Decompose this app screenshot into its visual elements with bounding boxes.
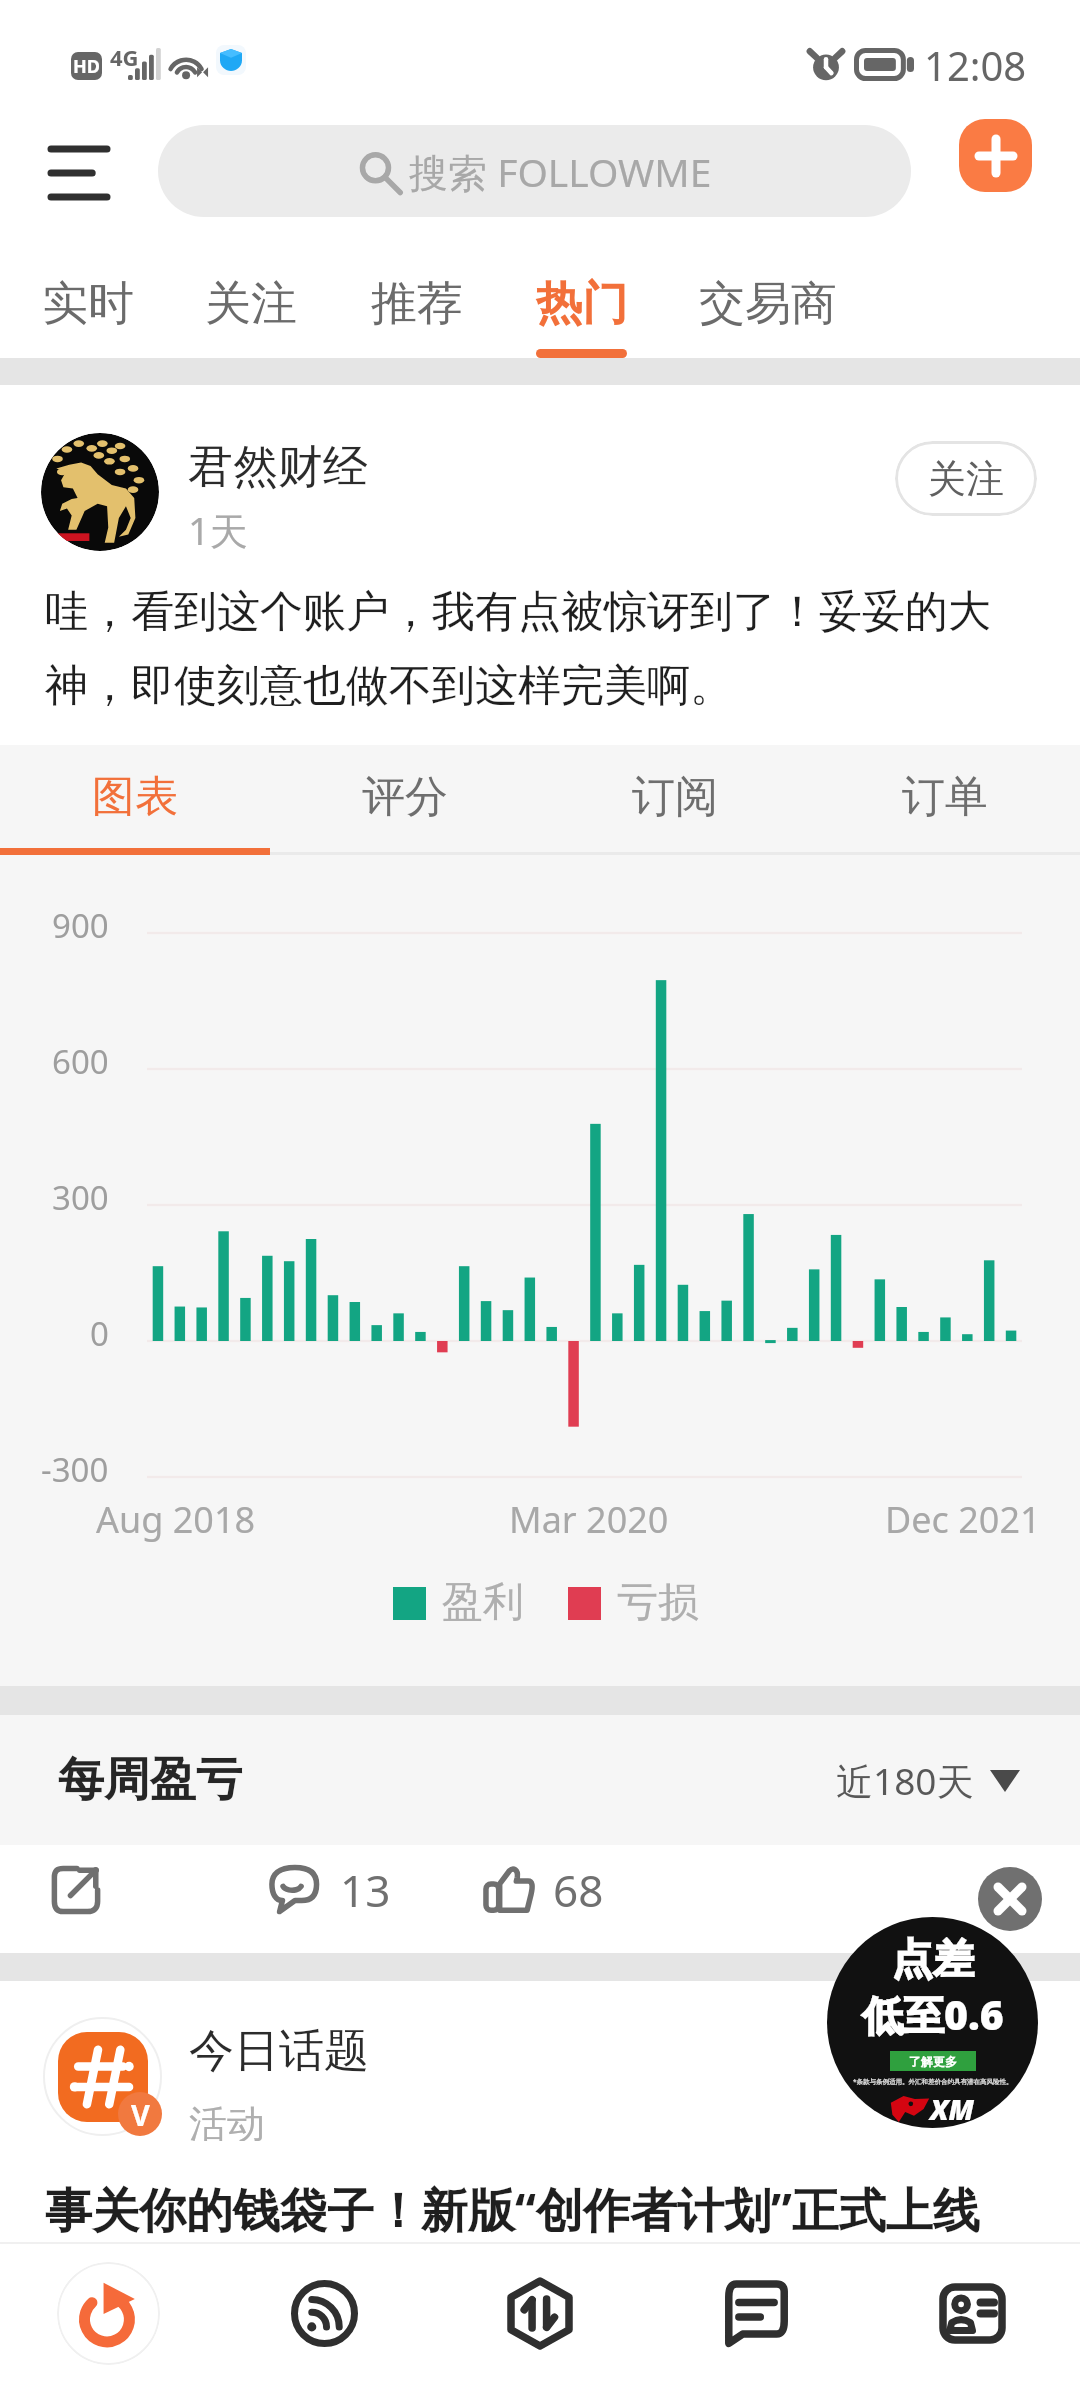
staticText: 搜索 FOLLOWME	[409, 145, 712, 198]
staticText: 600	[52, 1039, 109, 1084]
staticText: 关注	[928, 455, 1004, 503]
button[interactable]: 关注	[186, 235, 316, 358]
staticText: 300	[52, 1175, 109, 1220]
staticText: 近180天	[836, 1755, 974, 1806]
staticText: 活动	[189, 2100, 265, 2141]
staticText: 了解更多	[909, 2054, 957, 2069]
staticText: 推荐	[371, 275, 463, 333]
staticText: 事关你的钱袋子！新版“创作者计划”正式上线	[45, 2177, 980, 2241]
staticText: -300	[41, 1447, 109, 1492]
staticText: 交易商	[699, 275, 837, 333]
staticText: *条款与条例适用。外汇和差价合约具有潜在高风险性。	[853, 2077, 1013, 2086]
staticText: 低至0.6	[862, 1986, 1004, 2042]
button[interactable]: Comments	[270, 1836, 391, 1944]
button[interactable]: 热门	[517, 235, 647, 358]
staticText: 亏损	[617, 1577, 699, 1629]
button[interactable]: 订阅	[540, 745, 810, 849]
staticText: 订单	[902, 770, 988, 824]
staticText: Dec 2021	[885, 1495, 1041, 1544]
staticText: HD	[73, 54, 100, 79]
staticText: 点差	[892, 1934, 974, 1986]
staticText: Aug 2018	[96, 1495, 256, 1544]
staticText: 图表	[92, 770, 178, 824]
button[interactable]: 图表	[0, 745, 270, 849]
staticText: 关注	[205, 275, 297, 333]
button[interactable]: 订单	[810, 745, 1080, 849]
button[interactable]: 近180天	[836, 1755, 1020, 1806]
button[interactable]: 搜索 FOLLOWME	[158, 125, 911, 217]
staticText: 0	[90, 1311, 109, 1356]
staticText: 盈利	[442, 1577, 524, 1629]
staticText: 13	[340, 1860, 391, 1920]
button[interactable]: 关注	[895, 441, 1037, 516]
staticText: 实时	[42, 275, 134, 333]
button[interactable]: 评分	[270, 745, 540, 849]
staticText: 订阅	[632, 770, 718, 824]
staticText: 1天	[188, 504, 248, 556]
button[interactable]: Refresh	[0, 2244, 216, 2388]
staticText: 12:08	[924, 38, 1027, 92]
staticText: 每周盈亏	[58, 1751, 242, 1809]
staticText: 君然财经	[188, 439, 368, 496]
button[interactable]: 实时	[23, 235, 153, 358]
staticText: 热门	[536, 275, 628, 333]
button[interactable]: V	[43, 2017, 162, 2136]
button[interactable]: Trade	[432, 2244, 648, 2388]
button[interactable]: Close ad	[978, 1867, 1042, 1931]
staticText: 900	[52, 903, 109, 948]
staticText: 今日话题	[189, 2023, 369, 2080]
staticText: 评分	[362, 770, 448, 824]
staticText: XM	[930, 2090, 975, 2128]
staticText: 哇，看到这个账户，我有点被惊讶到了！妥妥的大神，即使刻意也做不到这样完美啊。	[45, 585, 1040, 712]
staticText: V	[131, 2095, 150, 2134]
staticText: 68	[553, 1860, 604, 1920]
button[interactable]: 推荐	[352, 235, 482, 358]
button[interactable]: 交易商	[678, 235, 858, 358]
button[interactable]: Menu	[33, 110, 125, 235]
button[interactable]: Add post	[959, 119, 1032, 192]
staticText: Mar 2020	[509, 1495, 669, 1544]
button[interactable]: Messages	[648, 2244, 864, 2388]
button[interactable]: Likes	[484, 1836, 604, 1944]
button[interactable]: Profile	[864, 2244, 1080, 2388]
button[interactable]	[41, 433, 159, 551]
staticText: 4G	[110, 42, 139, 72]
button[interactable]: Share	[43, 1836, 109, 1944]
button[interactable]: Feed	[216, 2244, 432, 2388]
button[interactable]: XM advertisement	[827, 1917, 1038, 2128]
